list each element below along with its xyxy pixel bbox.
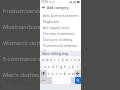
staticText: s [48,65,50,69]
staticText: Product/service [3,7,45,15]
staticText: c [56,72,58,76]
staticText: Musician/band [3,23,43,31]
button[interactable]: x [51,70,55,77]
button[interactable]: m [71,70,75,77]
staticText: , [49,79,50,83]
staticText: g [60,65,62,69]
staticText: ?123 [41,79,46,82]
button[interactable]: Women's clothes [0,35,120,51]
staticText: q [42,58,44,62]
button[interactable]: l [75,63,79,70]
staticText: Furniture business [43,31,75,36]
button[interactable]: t [57,56,61,63]
button[interactable]: u [65,56,69,63]
staticText: e [50,58,52,62]
staticText: Men's clothing shop [43,49,77,54]
button[interactable]: o [73,56,77,63]
button[interactable]: q [40,56,45,63]
staticText: u [66,58,68,62]
button[interactable]: j [67,63,71,70]
button[interactable]: Art supply store [40,24,81,30]
staticText: w [46,58,49,62]
button[interactable]: . [71,77,75,84]
button[interactable]: Product/service [0,3,120,19]
button[interactable]: Hair salon [0,83,120,90]
staticText: Men's clothes [3,71,40,79]
staticText: k [72,65,74,69]
button[interactable]: Musician/band [0,19,120,35]
other: Back [42,6,45,9]
button[interactable]: a [42,63,47,70]
button[interactable]: , [47,77,52,84]
staticText: o [74,58,76,62]
button[interactable]: c [55,70,59,77]
button[interactable]: r [53,56,57,63]
button[interactable]: g [59,63,63,70]
staticText: . [73,79,74,83]
staticText: Discount clothing store [43,37,81,42]
staticText: Women's clothes [3,39,49,47]
button[interactable]: e [49,56,53,63]
button[interactable]: ?123 [40,77,47,84]
button[interactable]: y [61,56,65,63]
button[interactable]: h [63,63,67,70]
staticText: Nightclub [43,19,60,24]
staticText: y [62,58,64,62]
staticText: Arts & entertainment [43,13,79,18]
staticText: Art supply store [43,25,70,30]
staticText: p [78,58,80,62]
staticText: Commercial website [43,43,78,48]
staticText: r [54,58,56,62]
staticText: E-commerce website [3,55,59,63]
button[interactable]: Shift [40,70,47,77]
button[interactable]: b [63,70,67,77]
button[interactable]: Backspace [75,70,81,77]
staticText: Add category [47,5,69,10]
staticText: v [60,72,62,76]
staticText: d [52,65,54,69]
staticText: m [72,72,75,76]
staticText: b [64,72,66,76]
staticText: n [68,72,70,76]
button[interactable]: Nightclub [40,18,81,24]
button[interactable]: f [55,63,59,70]
button[interactable]: n [67,70,71,77]
staticText: h [64,65,66,69]
button[interactable]: k [71,63,75,70]
button[interactable]: Men's clothes [0,67,120,83]
button[interactable]: Search [75,77,81,84]
button[interactable]: i [69,56,73,63]
staticText: t [58,58,60,62]
button[interactable]: E-commerce website [0,51,120,67]
button[interactable]: w [45,56,49,63]
staticText: i [71,58,72,62]
button[interactable]: z [47,70,51,77]
staticText: f [56,65,58,69]
staticText: 10:34 [41,0,48,4]
button[interactable]: Back [40,4,81,10]
staticText: x [52,72,54,76]
button[interactable]: Discount clothing store [40,36,81,42]
button[interactable]: v [59,70,63,77]
button[interactable]: p [77,56,81,63]
button[interactable]: Arts & entertainment [40,12,81,18]
button[interactable]: Furniture business [40,30,81,36]
button[interactable]: Commercial website [40,42,81,48]
button[interactable]: Men's clothing shop [40,48,81,54]
button[interactable]: s [47,63,51,70]
button[interactable]: d [51,63,55,70]
staticText: a [44,65,46,69]
staticText: j [69,65,70,69]
staticText: z [48,72,50,76]
staticText: l [77,65,78,69]
staticText: Men's clothing shop [42,52,69,56]
